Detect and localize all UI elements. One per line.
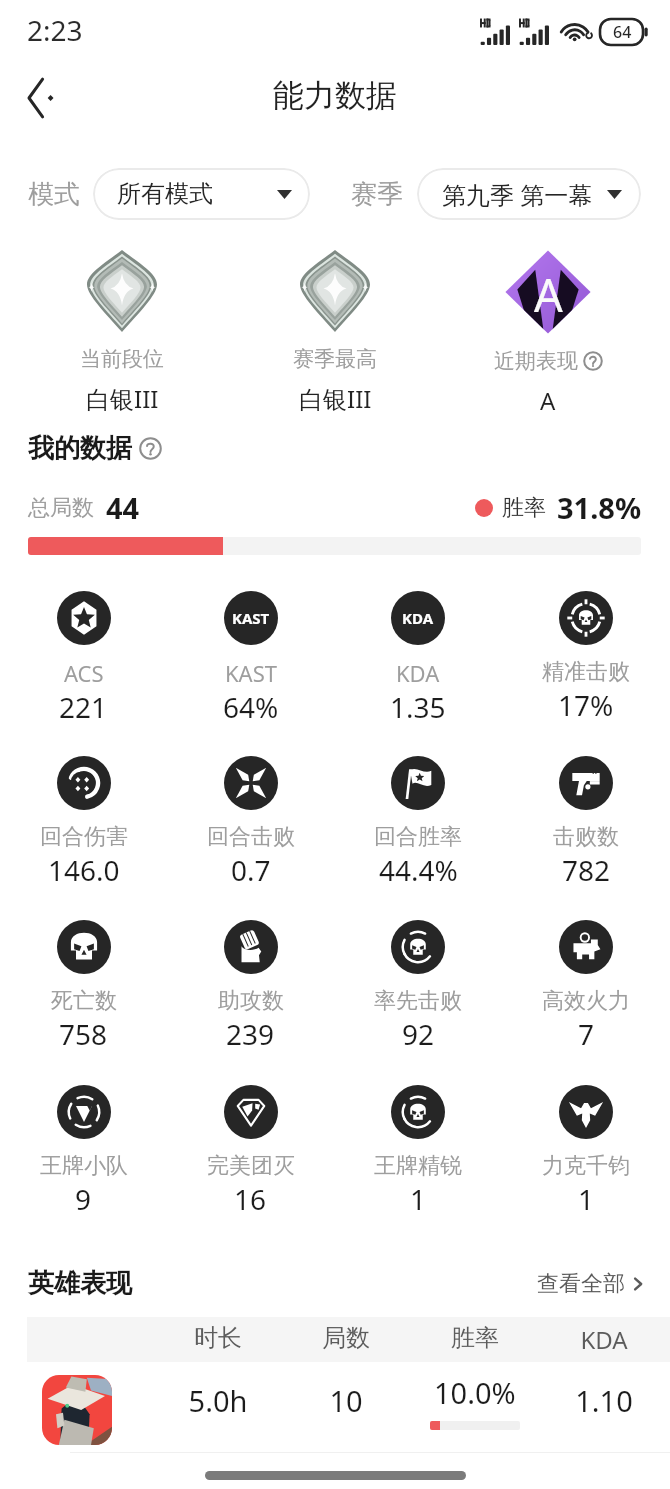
staticText: 胜率 bbox=[502, 494, 546, 522]
staticText: 第九季 第一幕 bbox=[442, 178, 593, 211]
button[interactable]: 赛季最高 bbox=[228, 240, 442, 415]
staticText: 助攻数 bbox=[218, 987, 284, 1015]
staticText: 10 bbox=[286, 1381, 406, 1420]
staticText: 赛季最高 bbox=[293, 346, 377, 372]
other: Signal, Wi-Fi and battery status bbox=[480, 18, 648, 45]
staticText: 5.0h bbox=[158, 1381, 278, 1420]
button[interactable]: 回合击败 bbox=[167, 756, 334, 889]
button[interactable]: ACS bbox=[0, 591, 167, 726]
button[interactable]: A bbox=[441, 240, 655, 417]
button[interactable]: KDA bbox=[334, 591, 502, 726]
staticText: 221 bbox=[59, 688, 108, 726]
staticText: 王牌小队 bbox=[40, 1152, 128, 1180]
button[interactable]: KAST bbox=[167, 591, 334, 726]
button[interactable]: 力克千钧 bbox=[502, 1085, 670, 1218]
staticText: KAST bbox=[225, 658, 277, 688]
button[interactable]: 高效火力 bbox=[502, 920, 670, 1053]
staticText: 1 bbox=[578, 1180, 595, 1218]
button[interactable]: 王牌精锐 bbox=[334, 1085, 502, 1218]
staticText: A bbox=[534, 264, 563, 325]
staticText: 782 bbox=[562, 851, 611, 889]
button[interactable]: 回合伤害 bbox=[0, 756, 167, 889]
staticText: 所有模式 bbox=[117, 179, 213, 209]
staticText: 白银III bbox=[86, 382, 159, 415]
staticText: 1 bbox=[410, 1180, 427, 1218]
staticText: 白银III bbox=[299, 382, 372, 415]
staticText: 当前段位 bbox=[80, 346, 164, 372]
staticText: 高效火力 bbox=[542, 987, 630, 1015]
staticText: 7 bbox=[578, 1015, 595, 1053]
staticText: 能力数据 bbox=[273, 76, 397, 115]
staticText: 1.35 bbox=[390, 688, 446, 726]
staticText: 44.4% bbox=[379, 851, 458, 889]
button[interactable]: 完美团灭 bbox=[167, 1085, 334, 1218]
staticText: 64% bbox=[223, 688, 279, 726]
button[interactable]: 助攻数 bbox=[167, 920, 334, 1053]
staticText: KDA bbox=[396, 658, 440, 688]
button[interactable]: 所有模式 bbox=[93, 168, 310, 220]
staticText: 2:23 bbox=[27, 11, 83, 49]
staticText: A bbox=[540, 384, 556, 417]
button[interactable]: 回合胜率 bbox=[334, 756, 502, 889]
staticText: 赛季 bbox=[351, 178, 403, 211]
staticText: 精准击败 bbox=[542, 658, 630, 686]
button[interactable]: 王牌小队 bbox=[0, 1085, 167, 1218]
staticText: 回合胜率 bbox=[374, 823, 462, 851]
staticText: 局数 bbox=[286, 1323, 406, 1353]
button[interactable]: 当前段位 bbox=[15, 240, 229, 415]
staticText: 率先击败 bbox=[374, 987, 462, 1015]
staticText: 92 bbox=[402, 1015, 435, 1053]
staticText: 击败数 bbox=[553, 823, 619, 851]
button[interactable]: 精准击败 bbox=[502, 591, 670, 724]
staticText: 44 bbox=[106, 488, 140, 527]
staticText: 9 bbox=[75, 1180, 92, 1218]
staticText: KDA bbox=[544, 1323, 664, 1356]
button[interactable]: 率先击败 bbox=[334, 920, 502, 1053]
staticText: KAST bbox=[232, 608, 270, 628]
button[interactable]: 查看全部 bbox=[537, 1270, 646, 1298]
button[interactable]: 死亡数 bbox=[0, 920, 167, 1053]
staticText: ACS bbox=[64, 658, 104, 688]
staticText: KDA bbox=[402, 608, 434, 628]
button[interactable]: 击败数 bbox=[502, 756, 670, 889]
staticText: 16 bbox=[234, 1180, 267, 1218]
staticText: 31.8% bbox=[557, 488, 642, 527]
staticText: 758 bbox=[59, 1015, 108, 1053]
staticText: 王牌精锐 bbox=[374, 1152, 462, 1180]
staticText: 239 bbox=[226, 1015, 275, 1053]
staticText: 0.7 bbox=[231, 851, 271, 889]
staticText: 模式 bbox=[28, 178, 80, 211]
staticText: 近期表现 bbox=[494, 348, 578, 374]
staticText: 胜率 bbox=[415, 1323, 535, 1353]
button[interactable]: 5.0h bbox=[0, 1362, 670, 1456]
staticText: 146.0 bbox=[48, 851, 120, 889]
staticText: 英雄表现 bbox=[28, 1267, 132, 1300]
staticText: 64 bbox=[613, 21, 632, 43]
staticText: 总局数 bbox=[28, 494, 94, 522]
staticText: 完美团灭 bbox=[207, 1152, 295, 1180]
staticText: 查看全部 bbox=[537, 1270, 625, 1298]
button[interactable]: Back bbox=[12, 71, 70, 129]
staticText: 时长 bbox=[158, 1323, 278, 1353]
staticText: 10.0% bbox=[434, 1373, 516, 1412]
staticText: 死亡数 bbox=[51, 987, 117, 1015]
staticText: 回合伤害 bbox=[40, 823, 128, 851]
button[interactable]: 我的数据 bbox=[28, 432, 162, 465]
staticText: 1.10 bbox=[544, 1381, 664, 1420]
staticText: 回合击败 bbox=[207, 823, 295, 851]
staticText: 17% bbox=[558, 686, 614, 724]
staticText: 我的数据 bbox=[28, 432, 132, 465]
staticText: 力克千钧 bbox=[542, 1152, 630, 1180]
button[interactable]: 第九季 第一幕 bbox=[417, 168, 641, 220]
